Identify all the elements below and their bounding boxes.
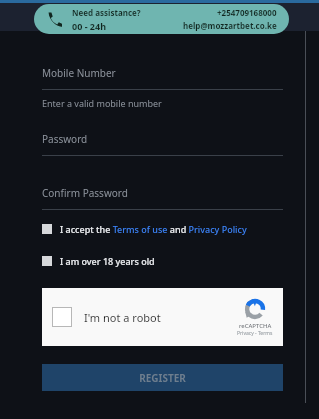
staticText: 00 - 24h	[72, 20, 107, 32]
staticText: Confirm Password	[42, 186, 128, 200]
button[interactable]: I accept the Terms of use and Privacy Po…	[42, 219, 283, 239]
button[interactable]: Call support	[34, 4, 289, 34]
button[interactable]: REGISTER	[42, 364, 283, 391]
staticText: help@mozzartbet.co.ke	[183, 20, 277, 31]
button[interactable]: I am over 18 years old	[42, 251, 283, 271]
staticText: I'm not a robot	[84, 310, 161, 325]
staticText: reCAPTCHA	[239, 322, 272, 330]
staticText: Need assistance?	[72, 7, 141, 18]
staticText: Password	[42, 132, 88, 146]
button[interactable]: I'm not a robot	[42, 288, 283, 346]
staticText: Mobile Number	[42, 66, 116, 80]
other: Call support	[46, 11, 62, 27]
staticText: Enter a valid mobile number	[42, 97, 162, 109]
staticText: REGISTER	[139, 371, 186, 385]
staticText: I am over 18 years old	[60, 255, 155, 267]
staticText: Privacy - Terms	[237, 330, 273, 337]
staticText: +254709168000	[217, 7, 277, 18]
staticText: I accept the Terms of use and Privacy Po…	[60, 223, 247, 235]
